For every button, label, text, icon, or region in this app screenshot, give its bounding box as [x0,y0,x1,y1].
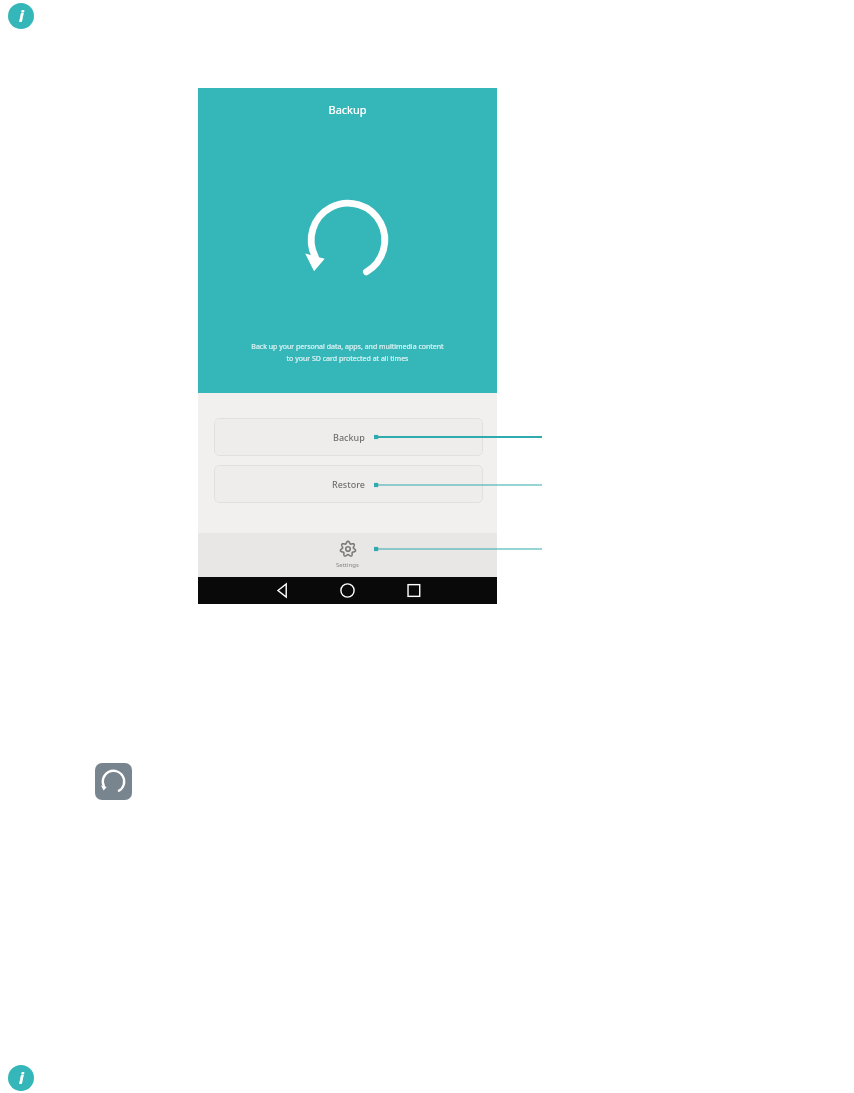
button[interactable]: Restore [214,465,483,503]
other: Backup app icon [95,763,132,800]
staticText: Restore [332,478,365,490]
button[interactable]: Backup [214,418,483,456]
staticText: Backup [333,431,365,443]
other: Information [8,1065,34,1091]
staticText: Settings [336,561,359,569]
button[interactable]: Settings [198,533,497,577]
staticText: Back up your personal data, apps, and mu… [214,342,481,376]
staticText: i [19,5,24,27]
staticText: Backup [198,102,497,122]
other: Information [8,3,34,29]
staticText: i [19,1067,24,1089]
